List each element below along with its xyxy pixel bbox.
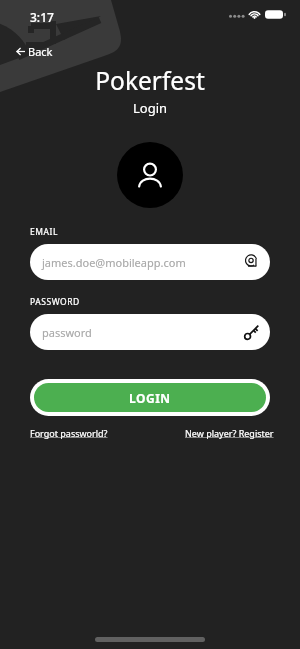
button[interactable]: Back [12, 41, 57, 62]
button[interactable]: Forgot passworld? [30, 427, 108, 439]
button[interactable]: password [30, 314, 270, 350]
staticText: james.doe@mobileapp.com [42, 255, 186, 270]
other: Email [244, 254, 260, 271]
staticText: Forgot passworld? [30, 427, 108, 439]
other: Password [243, 324, 260, 341]
button[interactable]: james.doe@mobileapp.com [30, 244, 270, 280]
staticText: Pokerfest [0, 64, 300, 97]
button[interactable]: New player? Register [185, 427, 274, 439]
staticText: password [42, 325, 92, 340]
staticText: Login [0, 99, 300, 117]
staticText: EMAIL [30, 226, 58, 238]
staticText: Back [28, 44, 53, 59]
staticText: New player? Register [185, 427, 274, 439]
staticText: LOGIN [129, 390, 171, 406]
staticText: 3:17 [30, 9, 54, 25]
staticText: PASSWORD [30, 296, 80, 308]
button[interactable]: LOGIN [34, 383, 266, 412]
